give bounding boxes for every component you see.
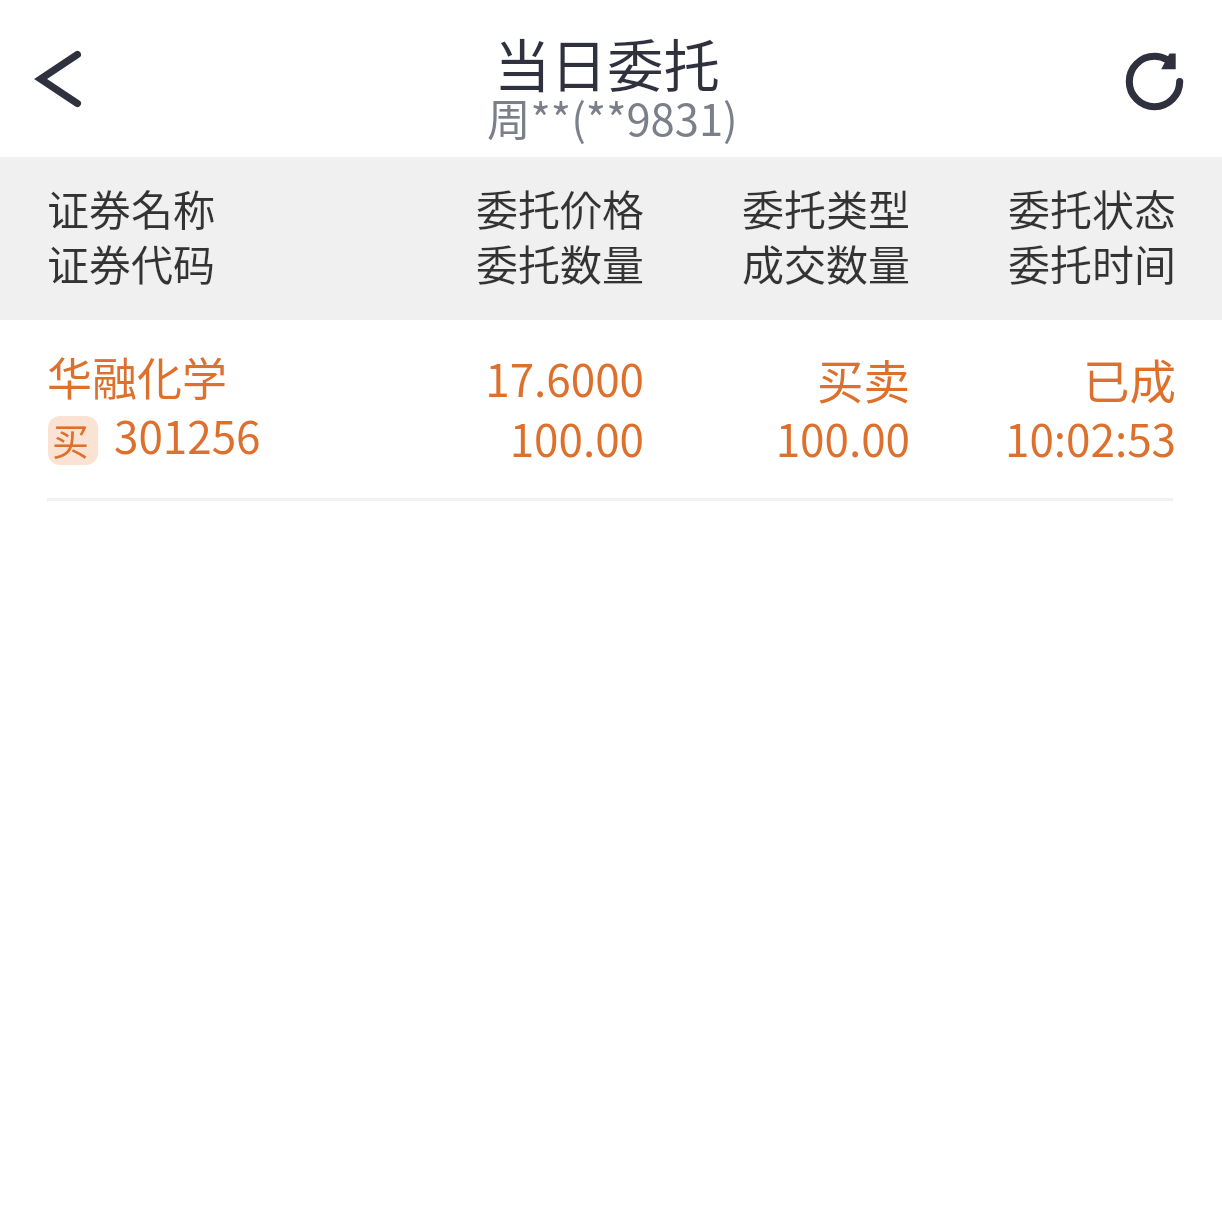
button[interactable]: Refresh bbox=[1104, 20, 1222, 138]
staticText: 委托时间 bbox=[896, 232, 1176, 293]
staticText: 委托状态 bbox=[896, 177, 1176, 238]
staticText: 100.00 bbox=[630, 406, 910, 470]
staticText: 华融化学 bbox=[47, 344, 228, 409]
staticText: 买 bbox=[52, 416, 89, 462]
staticText: 当日委托 bbox=[494, 21, 720, 103]
staticText: 证券名称 bbox=[47, 177, 216, 238]
staticText: 已成 bbox=[896, 345, 1176, 412]
staticText: 买卖 bbox=[630, 345, 910, 412]
staticText: 301256 bbox=[114, 403, 261, 467]
staticText: 17.6000 bbox=[364, 346, 644, 410]
staticText: 证券代码 bbox=[47, 232, 216, 293]
button[interactable]: Back bbox=[0, 20, 118, 138]
staticText: 周**(**9831) bbox=[487, 86, 738, 149]
button[interactable] bbox=[0, 320, 1222, 502]
staticText: 委托数量 bbox=[364, 232, 644, 293]
staticText: 10:02:53 bbox=[896, 406, 1176, 470]
staticText: 成交数量 bbox=[630, 232, 910, 293]
staticText: 委托价格 bbox=[364, 177, 644, 238]
staticText: 委托类型 bbox=[630, 177, 910, 238]
staticText: 100.00 bbox=[364, 406, 644, 470]
